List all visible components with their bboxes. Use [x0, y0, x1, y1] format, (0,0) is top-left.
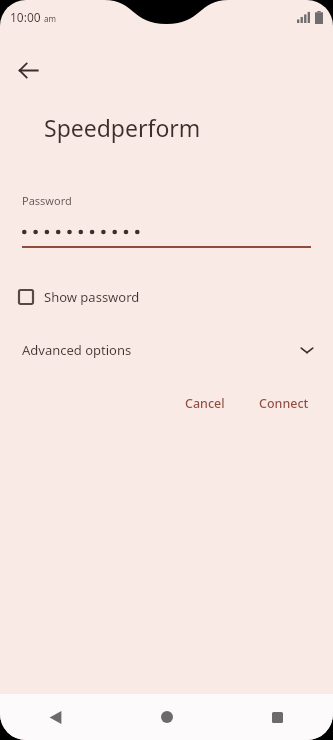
button[interactable]: Show password	[18, 280, 140, 314]
staticText: Password	[22, 193, 72, 208]
button[interactable]: Advanced options	[0, 334, 333, 366]
button[interactable]: Back	[8, 50, 48, 90]
staticText: 10:00	[10, 9, 41, 25]
button[interactable]: Recents	[222, 694, 333, 740]
staticText: Speedperform	[44, 112, 201, 143]
button[interactable]: Back	[0, 694, 111, 740]
button[interactable]	[22, 224, 311, 240]
button[interactable]: Home	[111, 694, 222, 740]
staticText: Advanced options	[22, 341, 132, 359]
button[interactable]: Connect	[249, 388, 319, 419]
button[interactable]: Cancel	[175, 388, 235, 419]
staticText: am	[44, 13, 56, 24]
staticText: Show password	[44, 288, 140, 306]
staticText: Cancel	[185, 395, 225, 412]
staticText: Connect	[259, 395, 309, 412]
